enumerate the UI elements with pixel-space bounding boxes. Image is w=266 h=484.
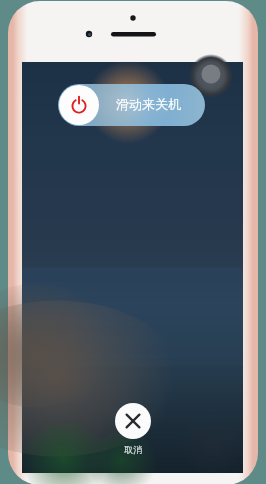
button[interactable]: 滑动来关机 (58, 84, 205, 126)
staticText: 滑动来关机 (116, 96, 181, 112)
button[interactable]: 取消 (115, 403, 151, 439)
button[interactable]: Power off (59, 85, 99, 125)
staticText: 取消 (121, 444, 145, 458)
